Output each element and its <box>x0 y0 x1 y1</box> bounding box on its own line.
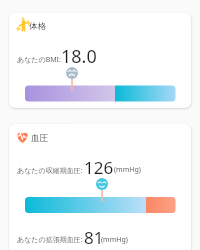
staticText: 血圧 <box>31 133 48 144</box>
staticText: (mmHg) <box>114 165 141 175</box>
staticText: 81 <box>84 226 104 249</box>
staticText: あなたの収縮期血圧: <box>17 166 83 176</box>
button[interactable]: 体格 <box>9 13 191 108</box>
staticText: 体格 <box>29 21 46 32</box>
other: 体格 <box>17 18 30 31</box>
staticText: あなたの拡張期血圧: <box>17 235 83 245</box>
button[interactable]: 血圧 <box>9 124 191 250</box>
staticText: あなたのBMI: <box>17 55 61 65</box>
other: 血圧 <box>16 130 29 143</box>
staticText: 126 <box>84 156 114 179</box>
staticText: (mmHg) <box>101 235 128 245</box>
staticText: 18.0 <box>61 44 97 69</box>
